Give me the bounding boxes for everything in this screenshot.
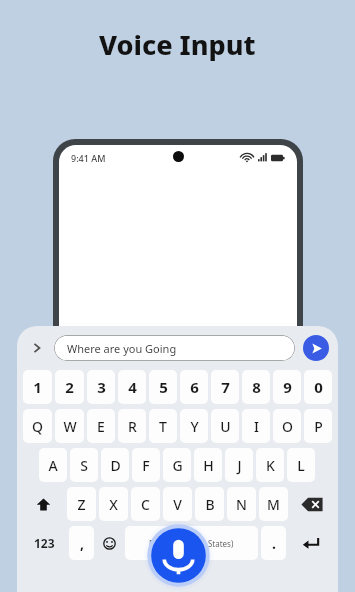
staticText: H [203, 456, 214, 475]
button[interactable]: Emoji [97, 526, 122, 560]
staticText: Z [77, 495, 86, 514]
button[interactable]: N [227, 487, 256, 521]
button[interactable]: Shift [23, 487, 64, 521]
staticText: 3 [97, 377, 106, 397]
staticText: T [159, 417, 167, 436]
button[interactable]: I [242, 409, 270, 443]
staticText: 4 [128, 377, 137, 397]
button[interactable]: 4 [118, 370, 146, 404]
button[interactable]: Z [67, 487, 96, 521]
staticText: 0 [314, 377, 323, 397]
button[interactable]: 3 [87, 370, 115, 404]
button[interactable]: Backspace [291, 487, 332, 521]
staticText: 7 [221, 377, 230, 397]
button[interactable]: A [39, 448, 67, 482]
button[interactable]: 8 [242, 370, 270, 404]
staticText: B [205, 495, 215, 514]
button[interactable]: L [287, 448, 315, 482]
staticText: C [141, 495, 150, 514]
button[interactable]: Q [23, 409, 52, 443]
staticText: English (United States) [149, 538, 234, 549]
button[interactable]: Expand [26, 337, 48, 359]
staticText: X [109, 495, 118, 514]
staticText: V [173, 495, 182, 514]
staticText: W [63, 417, 77, 436]
button[interactable]: P [304, 409, 332, 443]
staticText: S [80, 456, 88, 475]
staticText: A [48, 456, 58, 475]
staticText: 8 [252, 377, 261, 397]
button[interactable]: 0 [304, 370, 332, 404]
button[interactable]: G [163, 448, 191, 482]
button[interactable]: D [101, 448, 129, 482]
button[interactable]: U [211, 409, 239, 443]
button[interactable]: 1 [23, 370, 52, 404]
button[interactable]: V [163, 487, 192, 521]
staticText: E [97, 417, 105, 436]
staticText: 1 [33, 377, 42, 397]
button[interactable]: W [55, 409, 84, 443]
staticText: J [237, 456, 242, 475]
button[interactable]: 2 [55, 370, 84, 404]
staticText: O [282, 417, 293, 436]
button[interactable]: S [70, 448, 98, 482]
staticText: M [267, 495, 280, 514]
staticText: N [236, 495, 247, 514]
staticText: Voice Input [99, 26, 256, 63]
button[interactable]: . [261, 526, 286, 560]
staticText: L [297, 456, 305, 475]
button[interactable]: Y [180, 409, 208, 443]
button[interactable]: 6 [180, 370, 208, 404]
staticText: K [266, 456, 275, 475]
staticText: 6 [190, 377, 199, 397]
staticText: Q [32, 417, 43, 436]
staticText: I [254, 417, 259, 436]
staticText: F [142, 456, 150, 475]
staticText: P [314, 417, 323, 436]
button[interactable]: E [87, 409, 115, 443]
staticText: Where are you Going [67, 341, 177, 356]
button[interactable]: Where are you Going [54, 335, 295, 361]
staticText: U [220, 417, 231, 436]
button[interactable]: X [99, 487, 128, 521]
button[interactable]: 9 [273, 370, 301, 404]
button[interactable]: O [273, 409, 301, 443]
staticText: 2 [65, 377, 74, 397]
staticText: D [110, 456, 121, 475]
button[interactable]: English (United States) [125, 526, 258, 560]
button[interactable]: Send [303, 335, 329, 361]
staticText: . [272, 534, 276, 553]
button[interactable]: Voice input microphone [143, 520, 214, 591]
staticText: R [128, 417, 137, 436]
button[interactable]: 5 [149, 370, 177, 404]
staticText: 9:41 AM [71, 152, 106, 164]
staticText: , [80, 534, 84, 553]
button[interactable]: Enter [289, 526, 332, 560]
button[interactable]: C [131, 487, 160, 521]
button[interactable]: 123 [23, 526, 66, 560]
button[interactable]: , [69, 526, 94, 560]
button[interactable]: T [149, 409, 177, 443]
button[interactable]: J [225, 448, 253, 482]
staticText: 5 [159, 377, 168, 397]
button[interactable]: 7 [211, 370, 239, 404]
button[interactable]: R [118, 409, 146, 443]
staticText: G [172, 456, 183, 475]
button[interactable]: F [132, 448, 160, 482]
staticText: 9 [283, 377, 292, 397]
button[interactable]: H [194, 448, 222, 482]
staticText: Y [190, 417, 199, 436]
button[interactable]: M [259, 487, 288, 521]
button[interactable]: K [256, 448, 284, 482]
staticText: 123 [34, 535, 55, 551]
button[interactable]: B [195, 487, 224, 521]
